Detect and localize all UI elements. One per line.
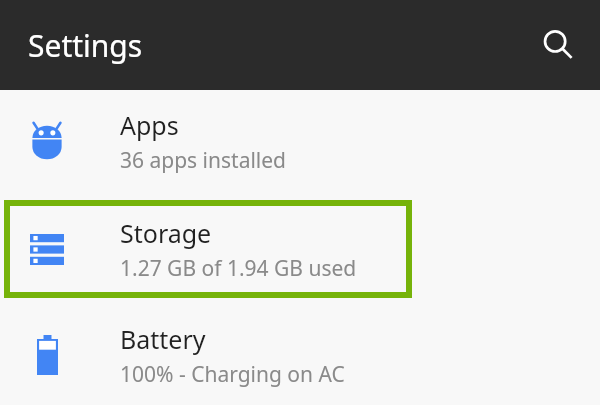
staticText: 1.27 GB of 1.94 GB used (120, 254, 357, 283)
button[interactable]: Search (530, 17, 586, 73)
staticText: Battery (120, 322, 206, 356)
staticText: 100% - Charging on AC (120, 360, 345, 389)
staticText: Settings (28, 25, 143, 66)
staticText: 36 apps installed (120, 146, 287, 175)
staticText: Apps (120, 108, 179, 142)
button[interactable]: Apps (0, 91, 600, 191)
button[interactable]: Storage (0, 200, 408, 298)
button[interactable]: Battery (0, 305, 600, 405)
staticText: Storage (120, 216, 212, 250)
